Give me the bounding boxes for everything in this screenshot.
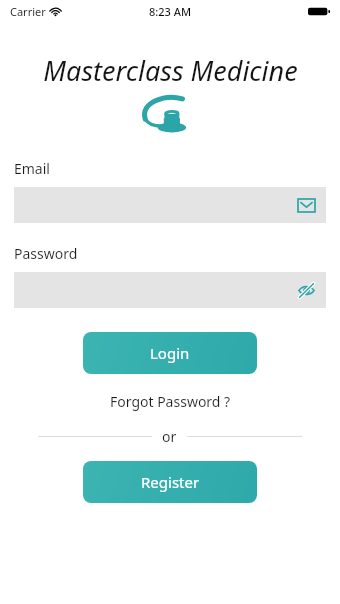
staticText: or: [162, 427, 177, 446]
staticText: Login: [150, 343, 190, 363]
button[interactable]: Register: [83, 461, 257, 503]
button[interactable]: Login: [83, 332, 257, 374]
staticText: Password: [14, 244, 78, 263]
staticText: Email: [14, 159, 50, 178]
staticText: Masterclass Medicine: [43, 52, 298, 89]
staticText: Carrier: [10, 4, 46, 19]
button[interactable]: Email input: [14, 187, 326, 223]
button[interactable]: Password input: [14, 272, 326, 308]
staticText: Register: [141, 472, 200, 492]
staticText: Forgot Password ?: [110, 392, 231, 411]
button[interactable]: Forgot Password ?: [98, 388, 243, 415]
button[interactable]: Show password: [296, 280, 316, 300]
button[interactable]: Email: [296, 195, 316, 215]
staticText: 8:23 AM: [149, 4, 192, 19]
